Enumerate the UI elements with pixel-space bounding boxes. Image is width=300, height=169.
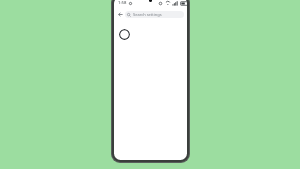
- staticText: Search settings: [133, 12, 162, 17]
- button[interactable]: Back: [116, 10, 124, 18]
- button[interactable]: Account: [119, 29, 130, 40]
- staticText: 1:58: [118, 0, 127, 6]
- button[interactable]: Search settings: [125, 11, 184, 18]
